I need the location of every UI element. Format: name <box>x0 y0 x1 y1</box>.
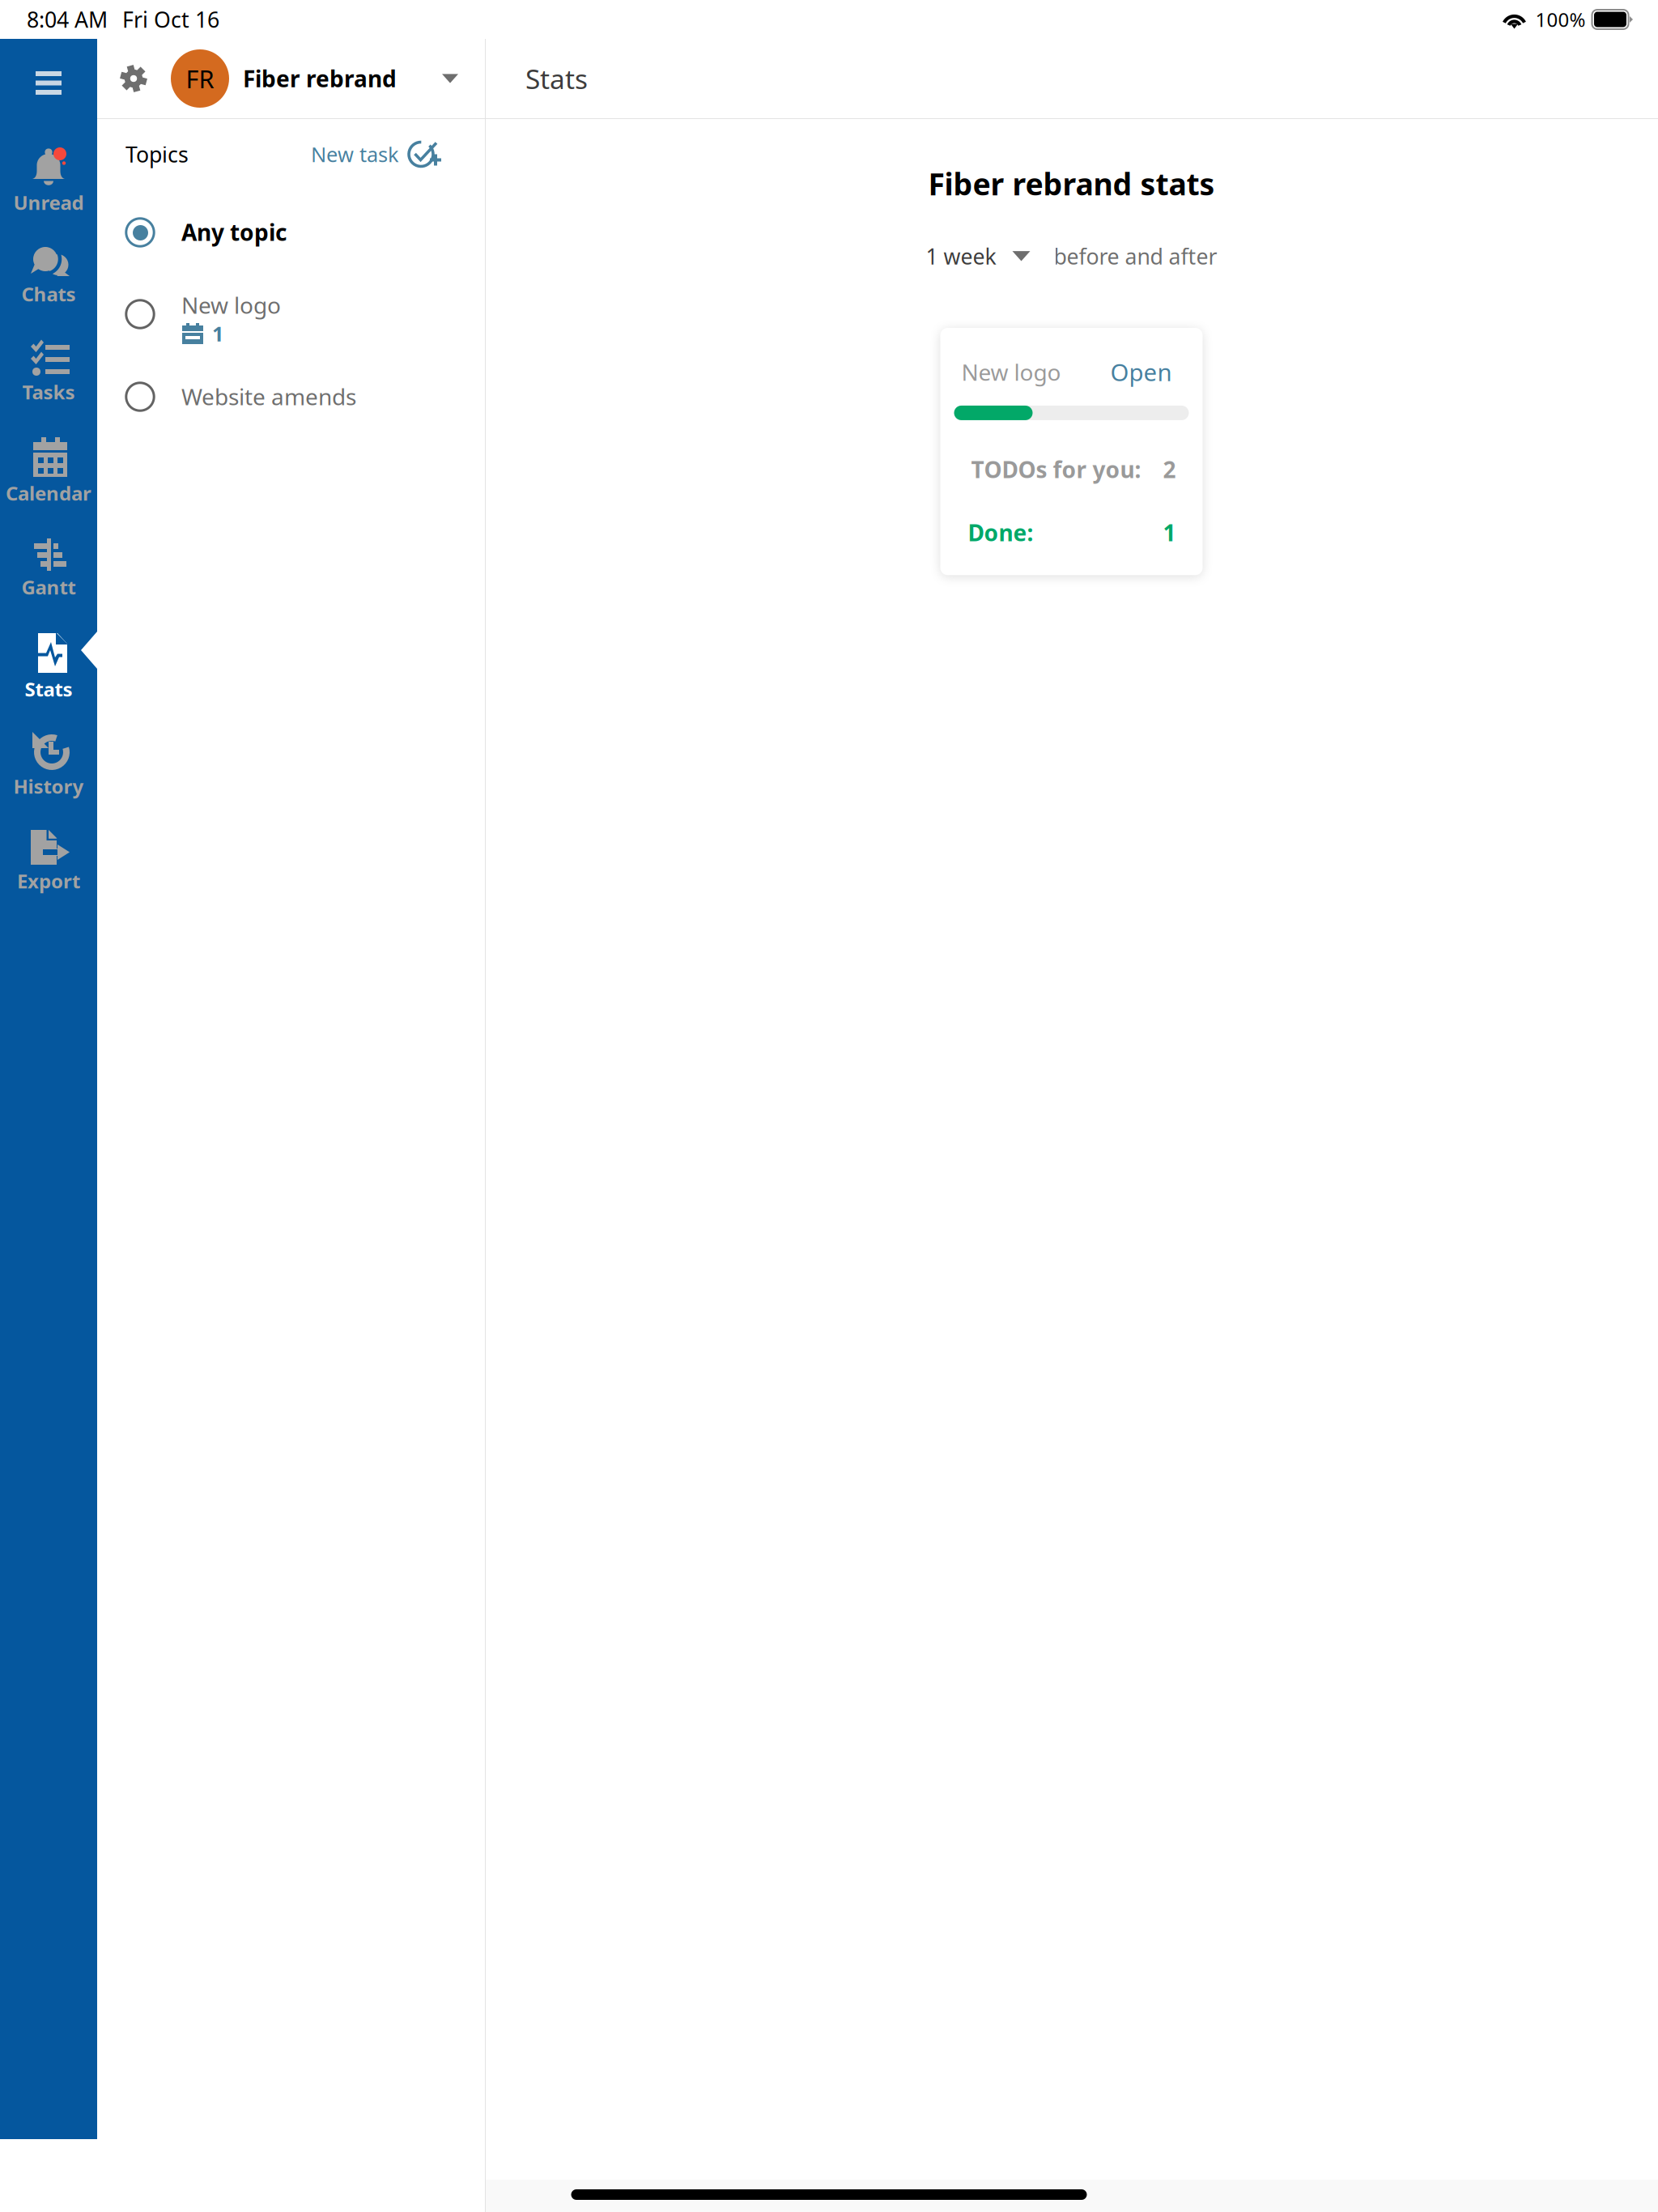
staticText: Stats <box>525 61 588 97</box>
staticText: TODOs for you: <box>971 454 1141 484</box>
staticText: 2 <box>1163 454 1176 484</box>
staticText: New logo <box>961 357 1061 387</box>
button[interactable]: Stats <box>0 613 97 710</box>
staticText: Gantt <box>21 574 76 600</box>
staticText: Done: <box>968 517 1033 548</box>
staticText: Open <box>1110 356 1172 388</box>
button[interactable]: New task <box>311 140 441 169</box>
staticText: New task <box>311 141 399 168</box>
staticText: 8:04 AM <box>27 5 108 34</box>
staticText: 1 <box>1163 517 1176 548</box>
button[interactable]: Any topic <box>97 189 485 271</box>
staticText: FR <box>186 62 214 95</box>
button[interactable]: New logo <box>97 271 485 354</box>
staticText: New logo <box>181 290 281 320</box>
staticText: Fiber rebrand stats <box>928 164 1215 204</box>
staticText: Fri Oct 16 <box>122 5 219 34</box>
staticText: History <box>13 773 84 799</box>
button[interactable]: Unread <box>0 127 97 224</box>
staticText: Chats <box>21 281 76 307</box>
button[interactable]: Menu <box>0 39 97 127</box>
button[interactable]: FR <box>158 39 470 118</box>
staticText: Topics <box>125 140 189 169</box>
button[interactable]: History <box>0 710 97 807</box>
staticText: Calendar <box>6 480 91 506</box>
button[interactable]: Export <box>0 807 97 904</box>
button[interactable]: 1 week <box>926 242 1030 270</box>
staticText: Website amends <box>181 381 356 411</box>
staticText: Fiber rebrand <box>243 63 397 94</box>
button[interactable]: Calendar <box>0 419 97 516</box>
staticText: before and after <box>1054 242 1217 270</box>
staticText: 1 <box>212 320 223 347</box>
staticText: Export <box>17 868 80 894</box>
staticText: Any topic <box>181 217 287 247</box>
button[interactable]: Website amends <box>97 354 485 436</box>
button[interactable]: Open <box>1110 356 1172 388</box>
button[interactable]: Settings <box>97 39 158 118</box>
button[interactable]: Gantt <box>0 516 97 613</box>
staticText: Unread <box>13 189 84 215</box>
button[interactable]: Chats <box>0 224 97 321</box>
staticText: Stats <box>25 676 72 702</box>
staticText: Tasks <box>22 379 75 405</box>
button[interactable]: Tasks <box>0 321 97 419</box>
staticText: 100% <box>1535 7 1586 32</box>
staticText: 1 week <box>926 242 996 270</box>
